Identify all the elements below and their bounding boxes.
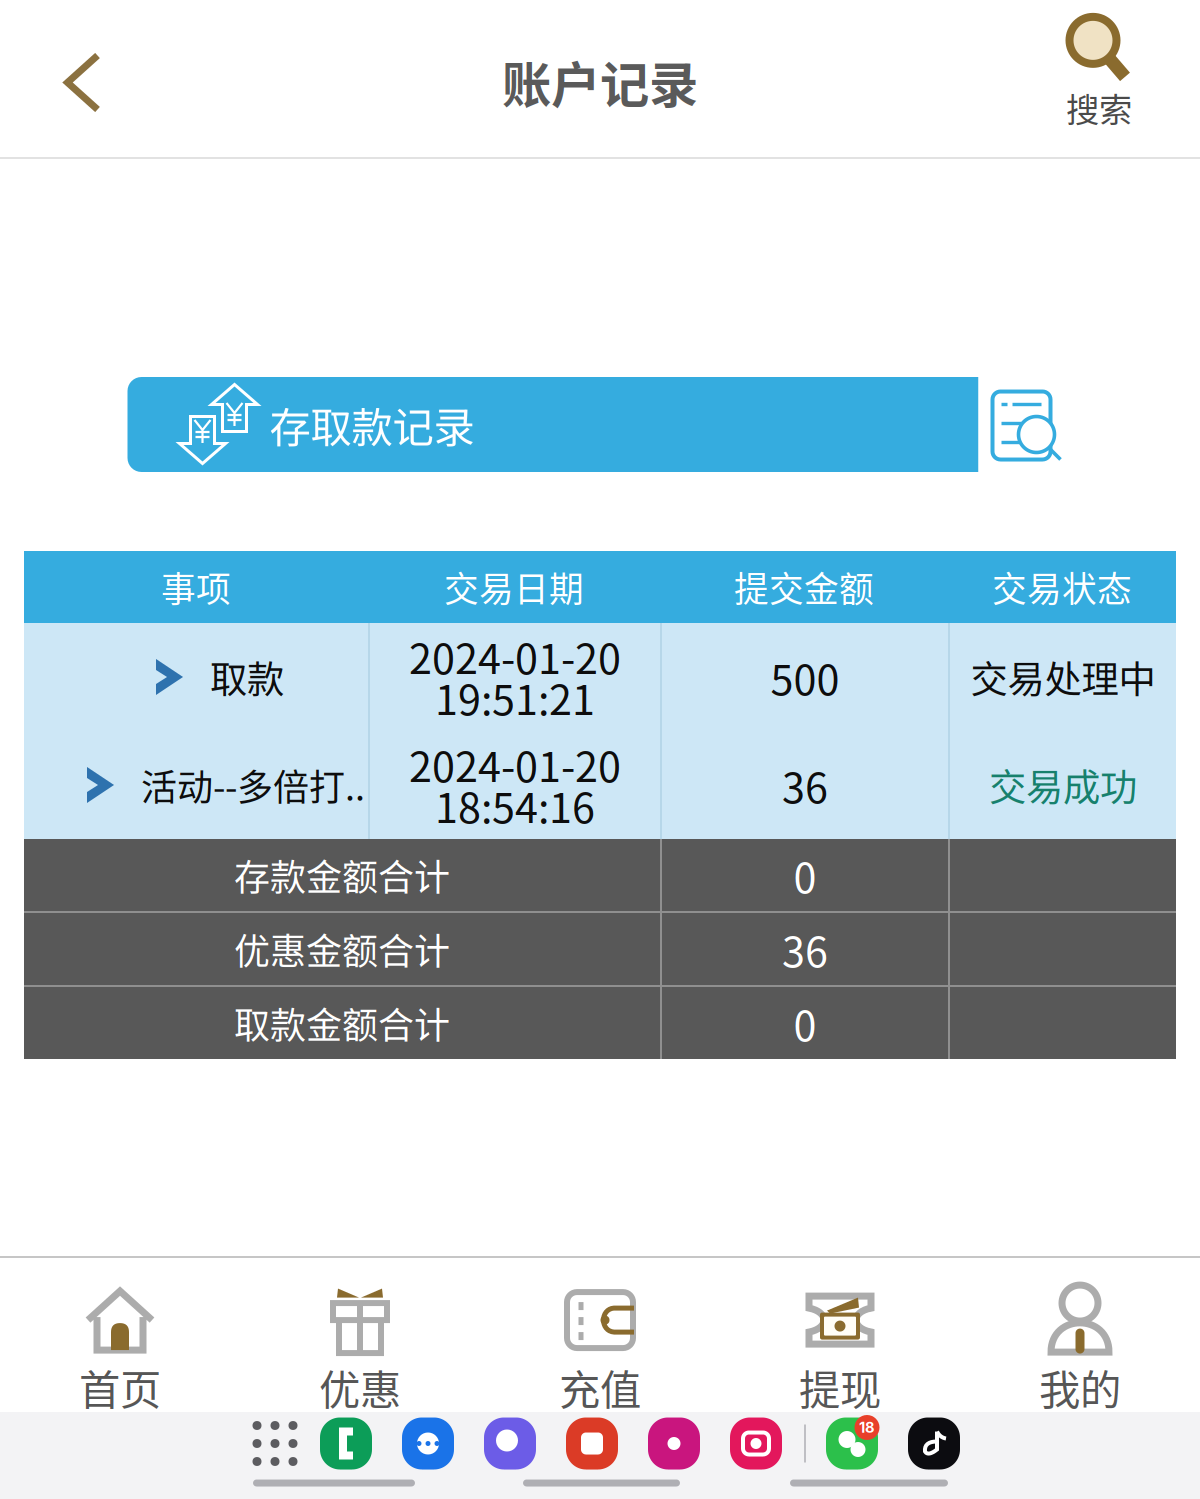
button[interactable]: 提现 bbox=[720, 1258, 960, 1412]
button[interactable]: 搜索 bbox=[1031, 0, 1167, 157]
staticText: 18:54:16 bbox=[435, 775, 595, 835]
staticText: 2024-01-20 bbox=[409, 626, 621, 686]
staticText: 交易日期 bbox=[444, 562, 584, 612]
staticText: 取款 bbox=[210, 650, 284, 704]
button[interactable]: 取款 bbox=[24, 623, 1176, 731]
staticText: 提现 bbox=[799, 1357, 881, 1417]
button[interactable]: 优惠 bbox=[240, 1258, 480, 1412]
staticText: 18 bbox=[859, 1419, 875, 1436]
staticText: 500 bbox=[770, 647, 839, 707]
staticText: 19:51:21 bbox=[435, 667, 595, 727]
staticText: 交易处理中 bbox=[970, 650, 1155, 704]
button[interactable]: Back bbox=[0, 0, 165, 157]
staticText: 0 bbox=[793, 993, 816, 1053]
staticText: 账户记录 bbox=[502, 46, 698, 117]
button[interactable]: 活动--多倍打.. bbox=[24, 731, 1176, 839]
staticText: 优惠金额合计 bbox=[234, 923, 450, 975]
staticText: 首页 bbox=[79, 1357, 161, 1417]
staticText: 我的 bbox=[1039, 1357, 1121, 1417]
staticText: 交易成功 bbox=[989, 758, 1137, 812]
staticText: 取款金额合计 bbox=[234, 997, 450, 1049]
staticText: 0 bbox=[793, 845, 816, 905]
staticText: 36 bbox=[782, 919, 828, 979]
button[interactable]: 充值 bbox=[480, 1258, 720, 1412]
staticText: 搜索 bbox=[1066, 83, 1132, 132]
button[interactable]: 存取款记录 bbox=[127, 377, 1072, 472]
button[interactable]: 首页 bbox=[0, 1258, 240, 1412]
staticText: 提交金额 bbox=[734, 562, 874, 612]
staticText: 36 bbox=[782, 755, 828, 815]
staticText: 交易状态 bbox=[992, 562, 1132, 612]
staticText: 存取款记录 bbox=[269, 395, 474, 454]
staticText: 活动--多倍打.. bbox=[141, 759, 365, 811]
staticText: 事项 bbox=[161, 562, 231, 612]
staticText: 充值 bbox=[559, 1357, 641, 1417]
button[interactable]: 我的 bbox=[960, 1258, 1200, 1412]
staticText: 优惠 bbox=[319, 1357, 401, 1417]
staticText: 2024-01-20 bbox=[409, 734, 621, 794]
staticText: 存款金额合计 bbox=[234, 849, 450, 901]
